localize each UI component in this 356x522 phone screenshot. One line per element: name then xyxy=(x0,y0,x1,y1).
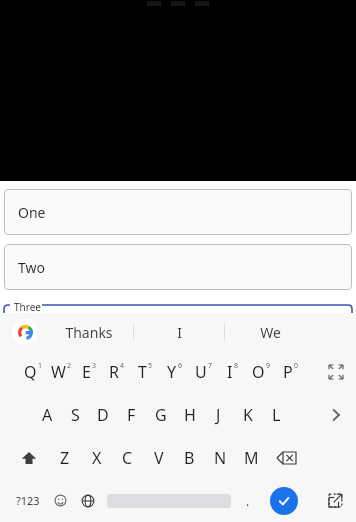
button[interactable]: Change language xyxy=(74,479,102,522)
button[interactable]: Thanks xyxy=(44,313,133,351)
button[interactable]: Space xyxy=(102,479,235,522)
button[interactable]: ?123 xyxy=(10,479,46,522)
button[interactable]: E xyxy=(75,351,103,393)
staticText: V xyxy=(154,447,164,469)
button[interactable]: C xyxy=(112,436,143,479)
button[interactable]: R xyxy=(103,351,131,393)
button[interactable]: Next xyxy=(315,393,356,436)
button[interactable]: We xyxy=(225,313,315,351)
staticText: K xyxy=(243,404,253,426)
staticText: 5 xyxy=(148,361,153,371)
button[interactable]: I xyxy=(134,313,224,351)
staticText: . xyxy=(246,493,250,509)
button[interactable]: W xyxy=(47,351,75,393)
button[interactable]: Backspace xyxy=(267,436,307,479)
staticText: P xyxy=(283,361,293,383)
staticText: 1 xyxy=(38,361,43,371)
button[interactable]: V xyxy=(143,436,174,479)
staticText: One xyxy=(18,203,46,222)
button[interactable]: Q xyxy=(19,351,47,393)
staticText: Q xyxy=(24,361,37,383)
button[interactable]: Resize keyboard xyxy=(315,351,356,393)
button[interactable]: S xyxy=(61,393,89,436)
staticText: C xyxy=(122,447,133,469)
button[interactable]: Open in new window xyxy=(315,479,356,522)
button[interactable]: U xyxy=(189,351,218,393)
button[interactable]: D xyxy=(89,393,117,436)
button[interactable]: Emoji xyxy=(46,479,74,522)
staticText: G xyxy=(155,404,167,426)
button[interactable]: B xyxy=(174,436,205,479)
staticText: X xyxy=(92,447,102,469)
staticText: ?123 xyxy=(16,493,40,508)
button[interactable]: P xyxy=(276,351,305,393)
button[interactable]: Two xyxy=(4,244,352,290)
staticText: 3 xyxy=(92,361,97,371)
staticText: B xyxy=(184,447,195,469)
staticText: R xyxy=(109,361,119,383)
staticText: Y xyxy=(167,361,177,383)
button[interactable]: One xyxy=(4,189,352,235)
button[interactable]: Z xyxy=(49,436,81,479)
button[interactable]: X xyxy=(81,436,112,479)
button[interactable]: L xyxy=(262,393,291,436)
staticText: E xyxy=(82,361,91,383)
staticText: 6 xyxy=(178,361,183,371)
staticText: Two xyxy=(18,258,45,277)
button[interactable]: I xyxy=(218,351,247,393)
staticText: 7 xyxy=(208,361,213,371)
staticText: We xyxy=(260,323,281,342)
staticText: U xyxy=(195,361,207,383)
button[interactable]: M xyxy=(236,436,267,479)
button[interactable]: J xyxy=(204,393,233,436)
button[interactable]: Enter xyxy=(260,479,307,522)
staticText: 4 xyxy=(120,361,125,371)
staticText: Three xyxy=(14,300,41,313)
button[interactable]: F xyxy=(117,393,146,436)
button[interactable]: . xyxy=(235,479,260,522)
staticText: Z xyxy=(60,447,70,469)
button[interactable]: G xyxy=(146,393,175,436)
button[interactable]: Shift xyxy=(8,436,49,479)
staticText: N xyxy=(214,447,227,469)
button[interactable]: A xyxy=(33,393,61,436)
button[interactable]: H xyxy=(175,393,204,436)
button[interactable]: Google xyxy=(12,319,38,345)
staticText: Thanks xyxy=(65,323,113,342)
button[interactable]: T xyxy=(131,351,160,393)
staticText: A xyxy=(42,404,53,426)
button[interactable]: Y xyxy=(160,351,189,393)
staticText: W xyxy=(51,361,66,383)
staticText: 9 xyxy=(266,361,271,371)
staticText: H xyxy=(184,404,196,426)
staticText: S xyxy=(71,404,80,426)
button[interactable]: O xyxy=(247,351,276,393)
staticText: M xyxy=(244,447,259,469)
staticText: I xyxy=(177,323,182,342)
staticText: O xyxy=(252,361,265,383)
button[interactable]: N xyxy=(205,436,236,479)
staticText: I xyxy=(227,361,233,383)
staticText: L xyxy=(272,404,281,426)
staticText: T xyxy=(138,361,147,383)
staticText: 8 xyxy=(234,361,239,371)
staticText: F xyxy=(127,404,136,426)
staticText: J xyxy=(216,404,221,426)
button[interactable]: K xyxy=(233,393,262,436)
staticText: 2 xyxy=(67,361,72,371)
staticText: 0 xyxy=(294,361,299,371)
staticText: D xyxy=(97,404,109,426)
